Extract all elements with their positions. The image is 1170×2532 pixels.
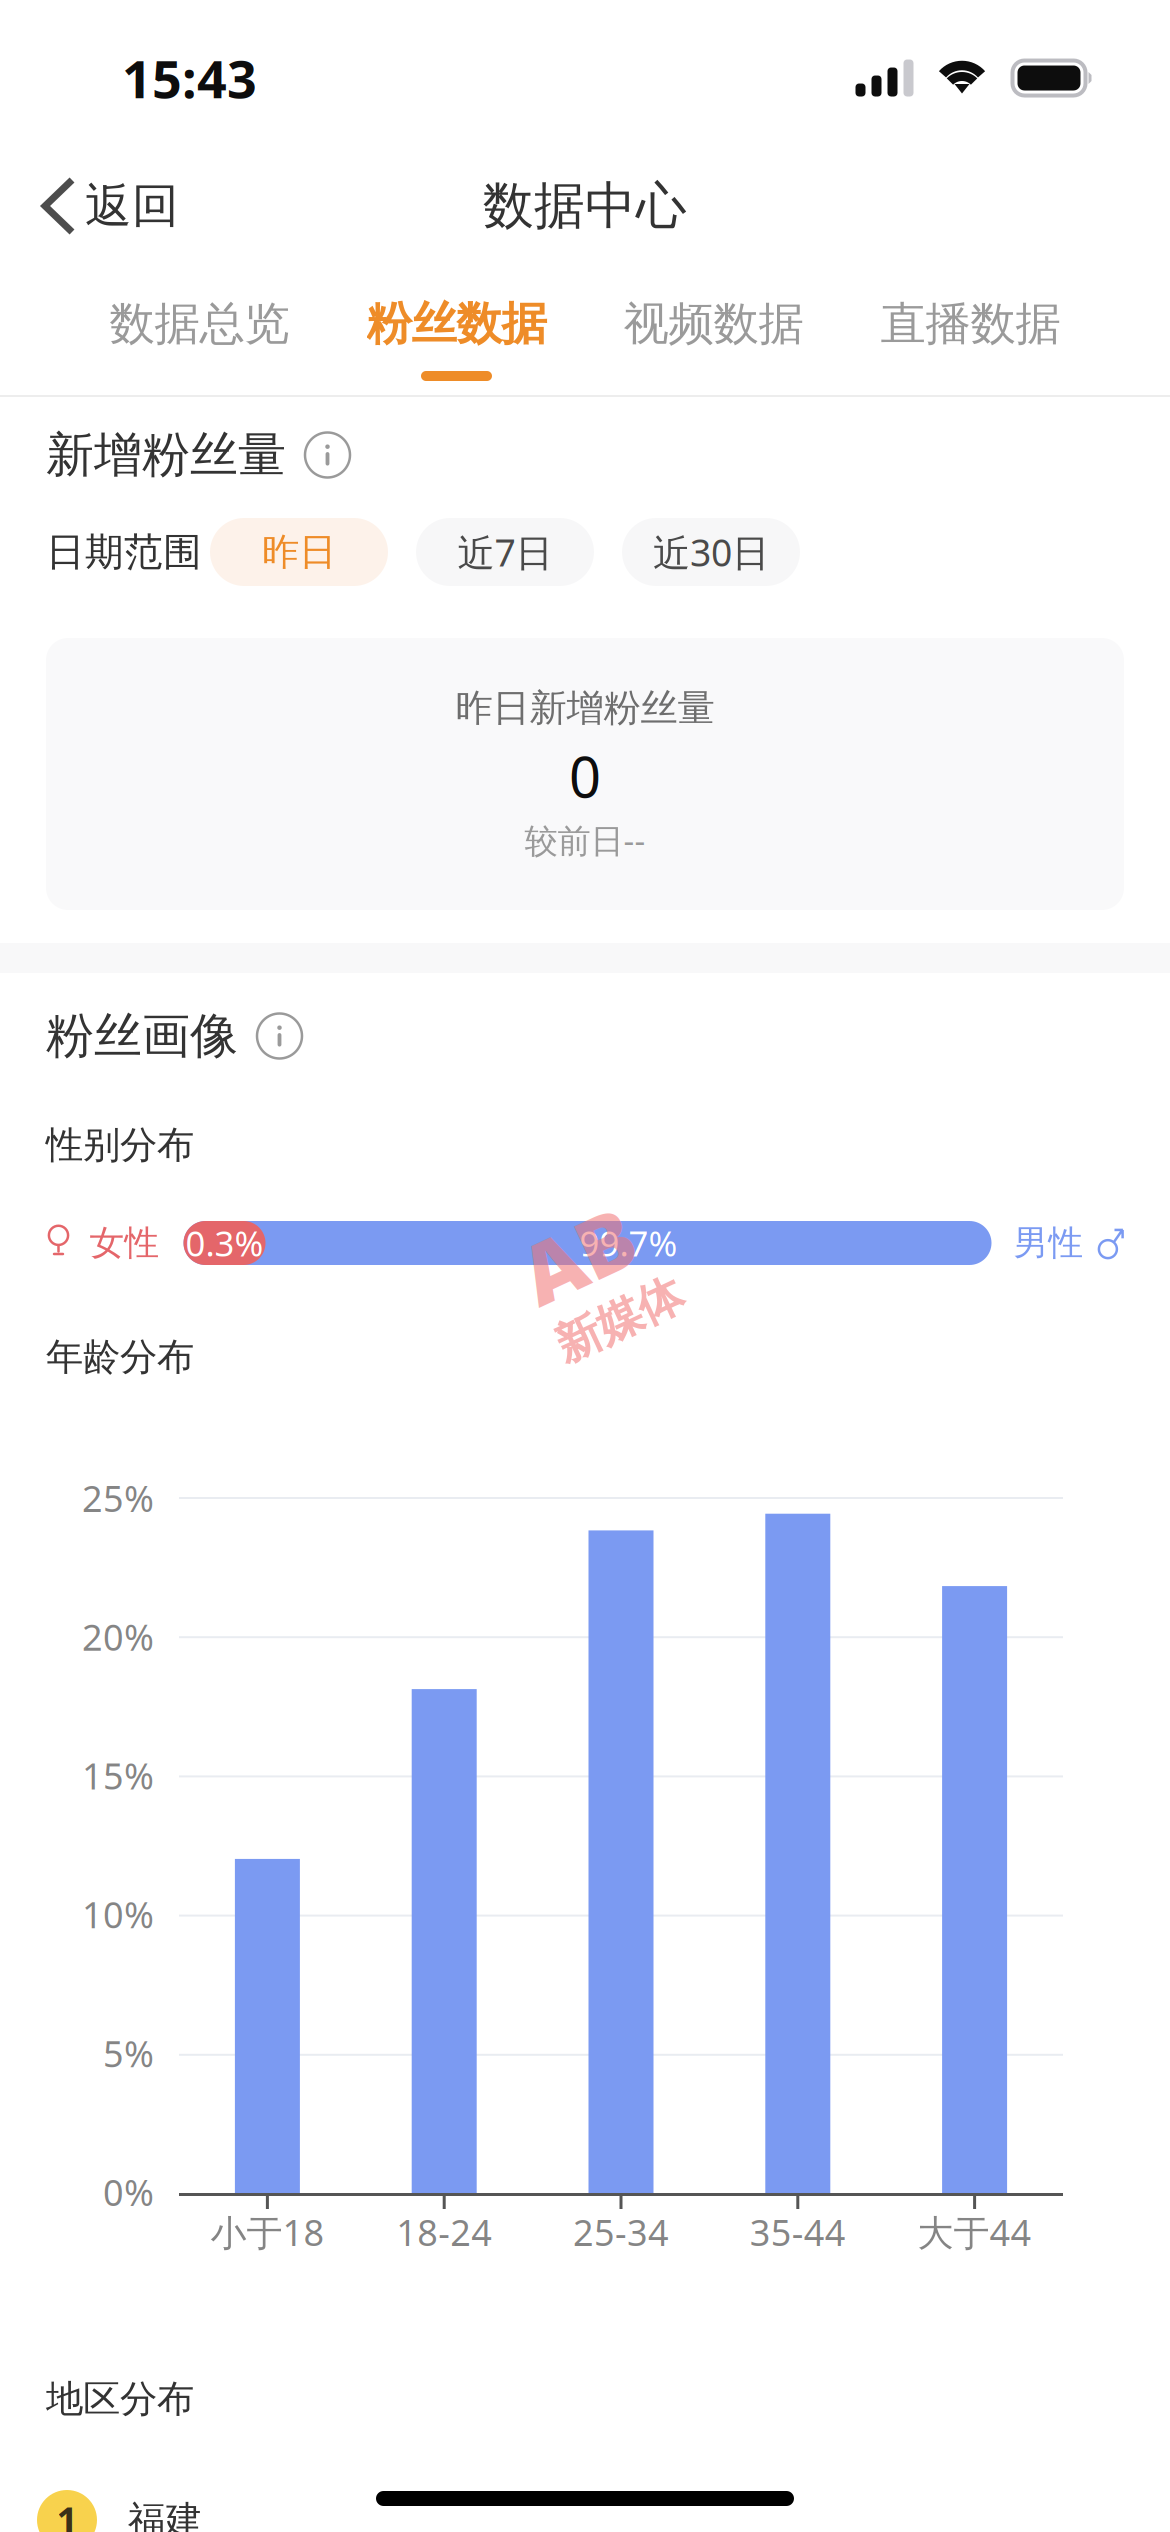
button[interactable]: 粉丝数据 bbox=[328, 300, 585, 381]
staticText: 女性 bbox=[89, 1222, 159, 1264]
staticText: 性别分布 bbox=[46, 1122, 194, 1168]
staticText: 1 bbox=[56, 2495, 77, 2532]
button[interactable]: 数据总览 bbox=[71, 300, 328, 381]
staticText: 数据中心 bbox=[483, 175, 687, 237]
staticText: 新媒体 bbox=[529, 1297, 664, 1353]
button[interactable]: 直播数据 bbox=[842, 300, 1099, 381]
staticText: 25% bbox=[82, 1474, 154, 1522]
staticText: 直播数据 bbox=[880, 296, 1060, 352]
staticText: 近30日 bbox=[653, 527, 769, 577]
staticText: 较前日-- bbox=[524, 818, 645, 862]
staticText: 近7日 bbox=[457, 527, 552, 577]
button[interactable]: 视频数据 bbox=[585, 300, 842, 381]
button[interactable]: 新增粉丝量说明 bbox=[305, 432, 350, 477]
staticText: 5% bbox=[103, 2029, 154, 2077]
staticText: 15:43 bbox=[122, 43, 257, 113]
staticText: 日期范围 bbox=[46, 528, 202, 576]
button[interactable]: 粉丝画像说明 bbox=[257, 1013, 302, 1058]
staticText: 粉丝画像 bbox=[46, 1006, 238, 1065]
button[interactable]: 昨日 bbox=[210, 518, 388, 586]
staticText: 年龄分布 bbox=[46, 1334, 194, 1380]
staticText: 男性 bbox=[1013, 1222, 1083, 1264]
staticText: 昨日 bbox=[262, 529, 336, 575]
staticText: 地区分布 bbox=[46, 2376, 194, 2422]
staticText: 35-44 bbox=[750, 2208, 846, 2256]
staticText: 粉丝数据 bbox=[366, 296, 546, 352]
staticText: 昨日新增粉丝量 bbox=[455, 685, 714, 731]
staticText: 10% bbox=[82, 1890, 154, 1938]
staticText: 0.3% bbox=[185, 1220, 263, 1266]
staticText: 99.7% bbox=[579, 1220, 677, 1266]
staticText: 新增粉丝量 bbox=[46, 425, 286, 484]
staticText: 25-34 bbox=[573, 2208, 669, 2256]
button[interactable]: 近7日 bbox=[416, 518, 594, 586]
button[interactable]: 近30日 bbox=[622, 518, 800, 586]
staticText: 18-24 bbox=[396, 2208, 492, 2256]
staticText: 小于18 bbox=[210, 2208, 324, 2256]
staticText: 15% bbox=[82, 1752, 154, 1799]
button[interactable]: 1 bbox=[37, 2490, 1115, 2532]
button[interactable]: 返回 bbox=[0, 158, 201, 254]
staticText: 数据总览 bbox=[109, 296, 289, 352]
staticText: 大于44 bbox=[918, 2208, 1032, 2256]
staticText: 0 bbox=[569, 739, 601, 813]
staticText: 0% bbox=[103, 2168, 154, 2216]
staticText: 福建 bbox=[128, 2497, 202, 2532]
staticText: 20% bbox=[82, 1613, 154, 1661]
staticText: 视频数据 bbox=[623, 296, 803, 352]
staticText: 返回 bbox=[85, 177, 179, 235]
staticText: AB bbox=[529, 1193, 645, 1303]
